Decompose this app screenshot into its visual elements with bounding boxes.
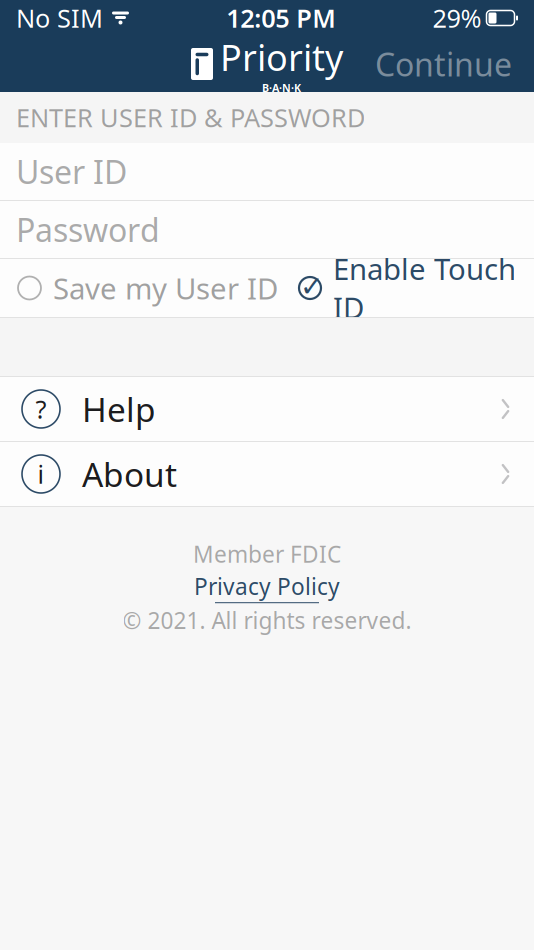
staticText: i bbox=[37, 457, 44, 491]
staticText: No SIM bbox=[16, 1, 103, 35]
staticText: ENTER USER ID & PASSWORD bbox=[16, 101, 365, 134]
button[interactable]: ? bbox=[0, 377, 534, 441]
staticText: Help bbox=[82, 387, 156, 431]
button[interactable]: i bbox=[0, 442, 534, 506]
staticText: Privacy Policy bbox=[194, 571, 340, 601]
staticText: ? bbox=[35, 392, 46, 426]
button[interactable]: ✓ bbox=[298, 239, 516, 337]
staticText: Enable Touch ID bbox=[333, 249, 516, 327]
button[interactable]: Save my User ID bbox=[18, 258, 278, 317]
staticText: ✓ bbox=[300, 271, 323, 302]
staticText: Member FDIC bbox=[193, 539, 341, 569]
staticText: 29% bbox=[432, 1, 481, 35]
staticText: Password bbox=[16, 208, 160, 251]
staticText: User ID bbox=[16, 150, 127, 193]
button[interactable]: Privacy Policy bbox=[194, 571, 340, 603]
staticText: About bbox=[82, 452, 177, 496]
staticText: Continue bbox=[375, 43, 512, 85]
staticText: 12:05 PM bbox=[226, 1, 336, 35]
button[interactable]: User ID bbox=[0, 143, 534, 200]
button[interactable]: Continue bbox=[363, 35, 524, 93]
staticText: B·A·N·K bbox=[262, 81, 301, 95]
staticText: Priority bbox=[220, 33, 343, 81]
button[interactable]: Password bbox=[0, 201, 534, 258]
staticText: Save my User ID bbox=[53, 268, 278, 307]
staticText: © 2021. All rights reserved. bbox=[122, 605, 411, 635]
